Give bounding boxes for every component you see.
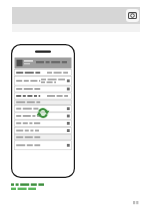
button[interactable] [12, 7, 140, 24]
other: Refresh [37, 107, 49, 119]
button[interactable]: Insert image [126, 9, 139, 22]
